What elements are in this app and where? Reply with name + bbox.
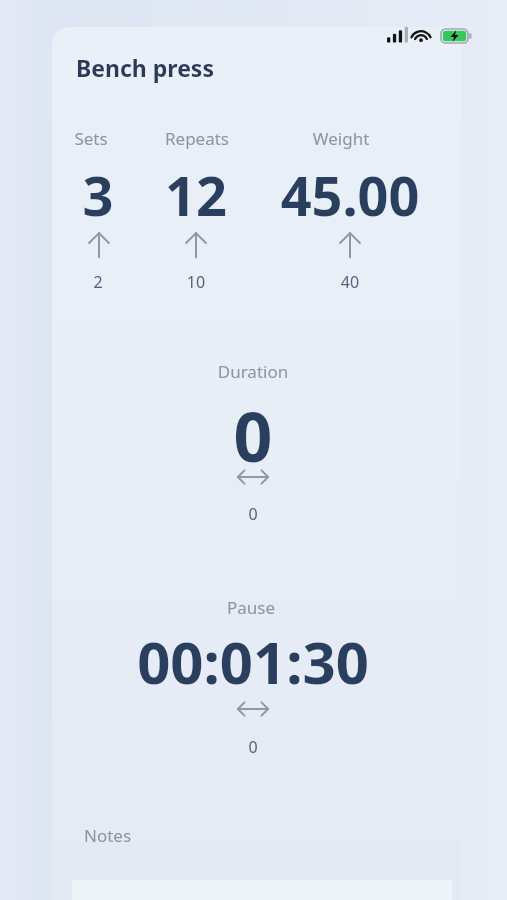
staticText: 40 xyxy=(315,271,385,293)
other: Adjust xyxy=(235,698,271,720)
staticText: Weight xyxy=(276,127,406,150)
staticText: Bench press xyxy=(76,52,214,83)
button[interactable] xyxy=(110,592,400,762)
staticText: 2 xyxy=(68,271,128,293)
button[interactable]: Bench press xyxy=(76,52,214,83)
staticText: 12 xyxy=(126,158,266,232)
other: Adjust xyxy=(235,466,271,488)
staticText: 00:01:30 xyxy=(88,622,418,701)
staticText: Pause xyxy=(151,596,351,619)
staticText: 45.00 xyxy=(220,158,480,232)
button[interactable] xyxy=(150,124,245,296)
button[interactable] xyxy=(262,124,442,296)
staticText: Repeats xyxy=(132,127,262,150)
staticText: Sets xyxy=(46,127,136,150)
staticText: 0 xyxy=(223,736,283,758)
staticText: 10 xyxy=(161,271,231,293)
button[interactable]: Notes xyxy=(84,824,434,860)
staticText: 0 xyxy=(153,389,353,482)
staticText: Notes xyxy=(84,824,132,847)
staticText: 3 xyxy=(38,158,158,232)
staticText: 0 xyxy=(223,503,283,525)
button[interactable] xyxy=(120,356,390,528)
other: Increase xyxy=(181,231,211,258)
other: Increase xyxy=(335,231,365,258)
other: Status icons xyxy=(385,25,475,47)
button[interactable] xyxy=(60,124,136,296)
staticText: Duration xyxy=(153,360,353,383)
other: Increase xyxy=(84,231,114,258)
